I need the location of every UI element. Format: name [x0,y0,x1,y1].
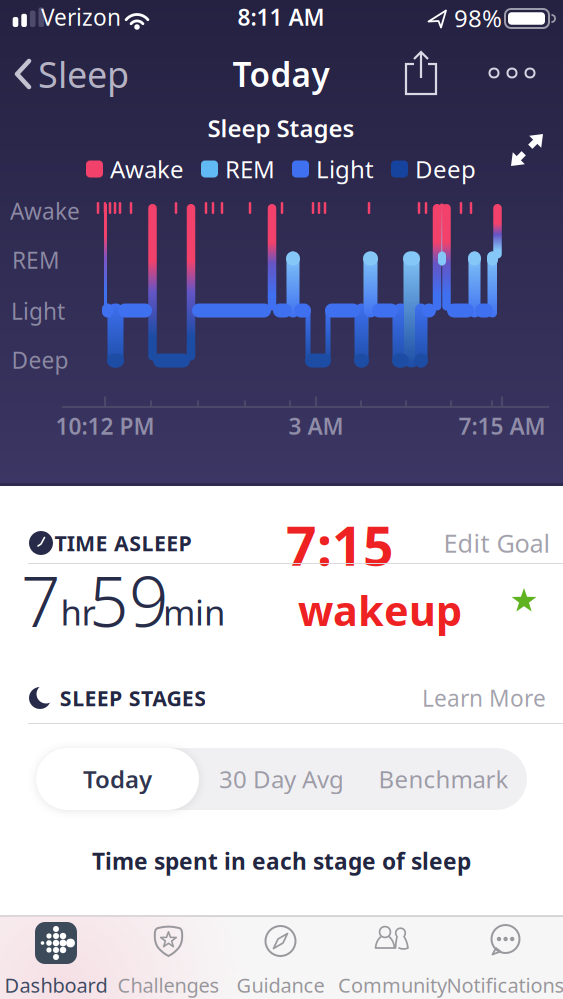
staticText: Sleep Stages [207,112,354,144]
staticText: 7:15 [286,510,394,580]
button[interactable]: More [489,68,534,77]
staticText: Sleep [38,50,129,98]
staticText: hr [60,589,95,635]
staticText: TIME ASLEEP [54,529,191,557]
staticText: Guidance [236,972,324,998]
staticText: REM [225,153,275,185]
staticText: REM [12,245,60,275]
staticText: Light [316,153,374,185]
button[interactable]: Dashboard [0,916,112,998]
staticText: Light [11,296,65,326]
staticText: Benchmark [378,763,508,795]
staticText: 59 [89,554,169,646]
staticText: 3 AM [288,411,343,441]
button[interactable]: Share [403,51,439,95]
button[interactable]: Community [336,916,448,998]
staticText: Community [338,972,447,998]
staticText: Today [83,763,152,795]
staticText: 30 Day Avg [219,763,344,795]
staticText: Challenges [117,972,219,998]
staticText: Awake [10,196,80,226]
staticText: Dashboard [4,972,107,998]
staticText: min [163,589,225,635]
staticText: SLEEP STAGES [60,684,206,712]
staticText: Notifications [446,972,563,998]
staticText: 98% [454,2,502,34]
button[interactable]: Today [36,748,199,810]
button[interactable]: Guidance [224,916,336,998]
button[interactable]: Challenges [112,916,224,998]
staticText: Edit Goal [443,526,550,560]
staticText: wakeup [298,583,462,637]
staticText: Verizon [41,2,121,32]
staticText: 8:11 AM [237,2,324,32]
staticText: Deep [11,345,68,375]
button[interactable]: Benchmark [363,748,523,810]
button[interactable]: Edit Goal [443,526,550,560]
staticText: Awake [110,153,184,185]
button[interactable]: Notifications [449,916,561,998]
staticText: Time spent in each stage of sleep [92,846,471,876]
button[interactable]: Learn More [422,683,546,713]
staticText: 7:15 AM [458,411,545,441]
staticText: Deep [415,153,476,185]
button[interactable]: Back [15,50,129,98]
staticText: Learn More [422,683,546,713]
button[interactable]: Expand [509,132,545,168]
staticText: 10:12 PM [55,411,154,441]
staticText: 7 [21,554,61,646]
staticText: Today [232,52,329,96]
button[interactable]: 30 Day Avg [201,748,361,810]
